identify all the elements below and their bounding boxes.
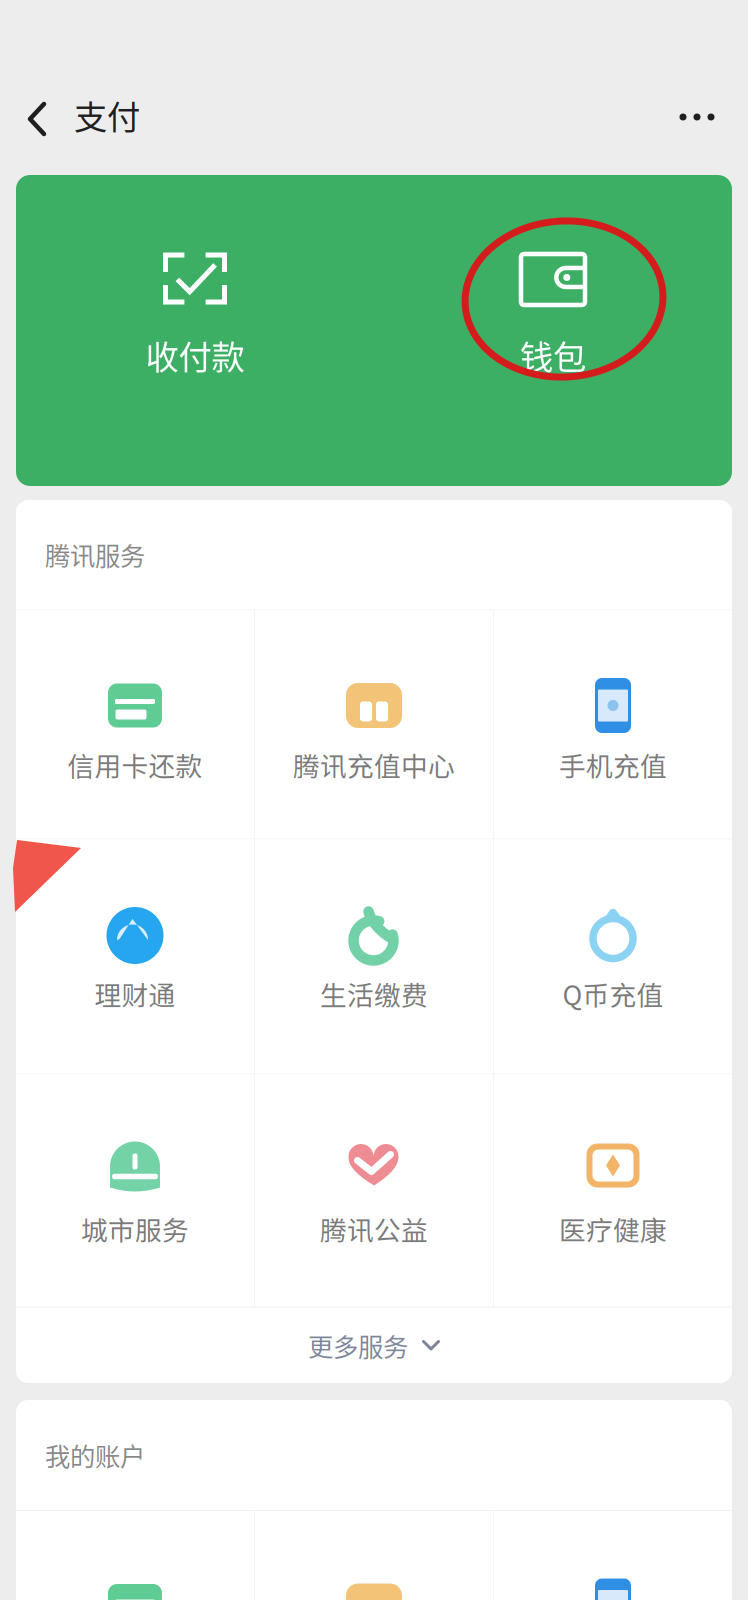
staticText: 我的账户 — [45, 1437, 145, 1473]
button[interactable]: 更多服务 — [16, 1307, 732, 1383]
staticText: 生活缴费 — [320, 974, 428, 1013]
button[interactable]: 银行卡 — [255, 1511, 493, 1600]
button[interactable]: 理财通 — [16, 839, 254, 1073]
staticText: 收付款 — [145, 331, 244, 379]
button[interactable]: 信用卡还款 — [16, 610, 254, 838]
staticText: Q币充值 — [562, 974, 663, 1013]
button[interactable]: 收付款 — [16, 175, 374, 486]
staticText: 腾讯充值中心 — [293, 745, 455, 784]
staticText: 钱包 — [520, 331, 586, 379]
button[interactable]: More — [657, 82, 737, 152]
button[interactable]: 手机充值 — [494, 610, 732, 838]
staticText: 医疗健康 — [559, 1209, 667, 1248]
staticText: 信用卡还款 — [67, 745, 202, 784]
staticText: 腾讯服务 — [45, 536, 145, 573]
button[interactable]: 支付分 — [494, 1511, 732, 1600]
staticText: 理财通 — [94, 974, 175, 1013]
button[interactable]: 零钱 — [16, 1511, 254, 1600]
button[interactable]: 生活缴费 — [255, 839, 493, 1073]
button[interactable]: Q币充值 — [494, 839, 732, 1073]
staticText: 手机充值 — [559, 745, 667, 784]
button[interactable]: 医疗健康 — [494, 1074, 732, 1306]
button[interactable]: 钱包 — [374, 175, 732, 486]
button[interactable]: Back — [10, 82, 64, 156]
staticText: 更多服务 — [308, 1327, 408, 1364]
button[interactable]: 城市服务 — [16, 1074, 254, 1306]
button[interactable]: 腾讯公益 — [255, 1074, 493, 1306]
staticText: 城市服务 — [81, 1209, 189, 1248]
staticText: 支付 — [74, 91, 140, 139]
button[interactable]: 腾讯充值中心 — [255, 610, 493, 838]
staticText: 腾讯公益 — [320, 1209, 428, 1248]
